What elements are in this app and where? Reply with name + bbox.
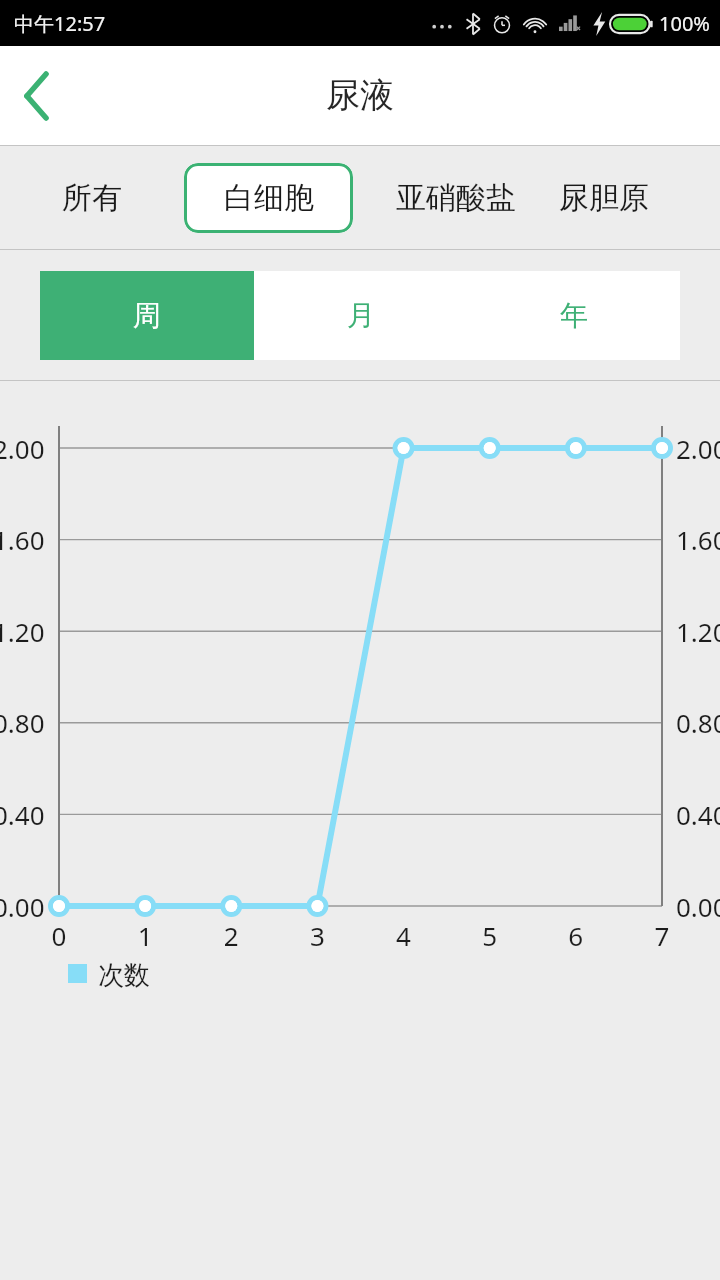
staticText: 周	[133, 298, 161, 333]
staticText: 白细胞	[224, 179, 314, 217]
button[interactable]: 月	[254, 271, 467, 360]
staticText: 月	[347, 298, 375, 333]
button[interactable]: 周	[40, 271, 254, 360]
staticText: 年	[560, 298, 588, 333]
button[interactable]: 亚硝酸盐	[353, 146, 559, 249]
staticText: 中午12:57	[14, 10, 106, 37]
button[interactable]: 年	[467, 271, 680, 360]
staticText: 尿胆原	[559, 179, 649, 217]
staticText: 所有	[62, 179, 122, 217]
staticText: 尿液	[326, 74, 394, 117]
button[interactable]: Back	[0, 60, 72, 132]
staticText: 100%	[659, 10, 710, 37]
button[interactable]: 所有	[0, 146, 184, 249]
staticText: 亚硝酸盐	[396, 179, 516, 217]
button[interactable]: 白细胞	[184, 163, 353, 233]
button[interactable]: 尿胆原	[559, 146, 720, 249]
